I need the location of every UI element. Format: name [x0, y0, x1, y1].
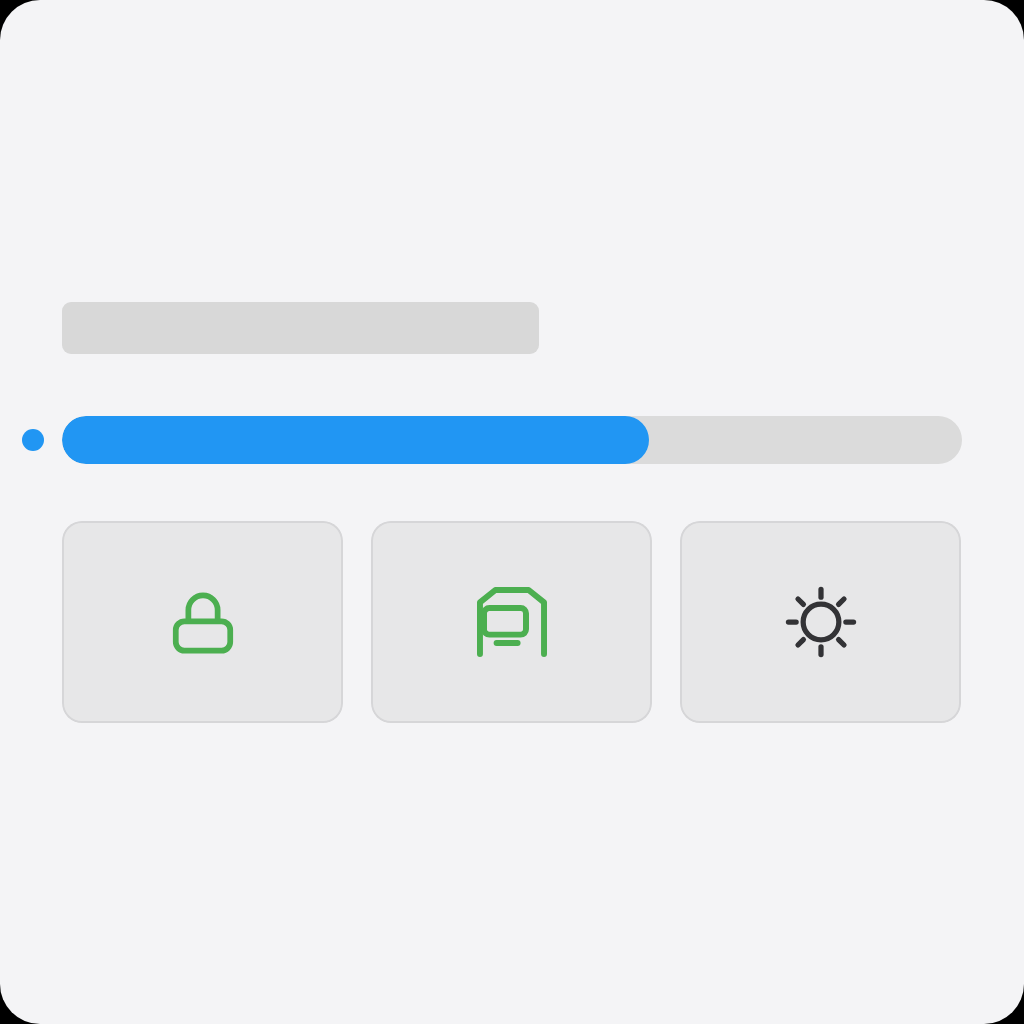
button[interactable] — [62, 416, 962, 464]
button[interactable]: Brightness — [680, 521, 961, 723]
button[interactable]: Lock — [62, 521, 343, 723]
button[interactable]: Garage door — [371, 521, 652, 723]
